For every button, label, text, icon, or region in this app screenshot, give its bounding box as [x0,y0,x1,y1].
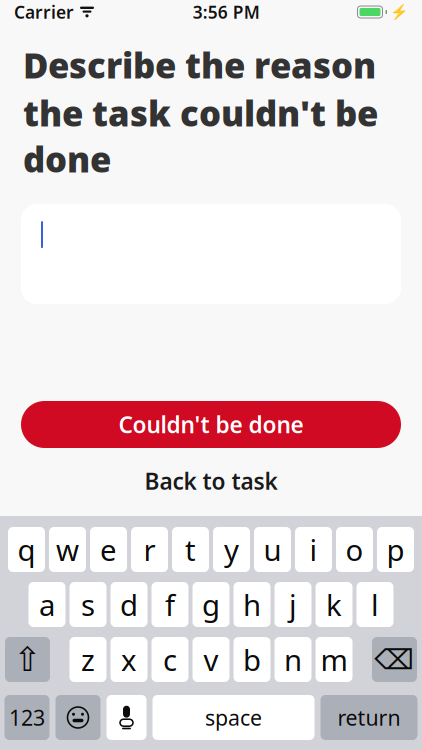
staticText: j [289,585,297,624]
button[interactable]: j [274,582,311,627]
button[interactable]: v [192,637,229,682]
button[interactable]: k [315,582,352,627]
staticText: Couldn't be done [118,409,303,439]
button[interactable]: space [152,695,314,740]
staticText: x [121,640,137,679]
button[interactable]: l [356,582,393,627]
staticText: e [100,530,117,569]
staticText: n [284,640,302,679]
button[interactable]: s [69,582,106,627]
staticText: a [39,585,55,624]
button[interactable]: 123 [4,695,49,740]
staticText: b [243,640,261,679]
staticText: h [243,585,261,624]
staticText: r [143,530,155,569]
button[interactable]: Back to task [21,464,401,498]
staticText: Carrier [14,0,74,23]
button[interactable]: u [254,527,291,572]
staticText: Back to task [144,466,277,496]
button[interactable]: h [233,582,270,627]
staticText: w [56,530,79,569]
button[interactable]: f [151,582,188,627]
staticText: u [263,530,281,569]
staticText: f [165,585,175,624]
staticText: q [17,530,35,569]
button[interactable]: Dictation [106,695,146,740]
staticText: v [203,640,218,679]
staticText: z [81,640,95,679]
staticText: m [320,640,347,679]
staticText: k [326,585,342,624]
button[interactable]: q [8,527,45,572]
button[interactable]: Delete [372,637,417,682]
button[interactable]: w [49,527,86,572]
staticText: o [345,530,363,569]
button[interactable]: Emoji [55,695,100,740]
button[interactable]: z [69,637,106,682]
staticText: 3:56 PM [193,0,260,23]
staticText: return [337,703,400,732]
button[interactable]: y [213,527,250,572]
button[interactable]: g [192,582,229,627]
staticText: ⌫ [374,644,414,675]
staticText: 123 [9,703,45,732]
button[interactable]: o [336,527,373,572]
button[interactable]: m [315,637,352,682]
staticText: space [205,703,262,732]
staticText: g [202,585,220,624]
button[interactable]: i [295,527,332,572]
button[interactable]: x [110,637,147,682]
staticText: t [185,530,196,569]
button[interactable]: return [320,695,417,740]
button[interactable]: Couldn't be done [21,401,401,448]
staticText: l [371,585,379,624]
staticText: p [386,530,404,569]
staticText: ⇧ [13,641,41,678]
staticText: i [309,530,317,569]
button[interactable]: a [28,582,65,627]
button[interactable]: d [110,582,147,627]
button[interactable]: Shift [5,637,50,682]
button[interactable]: e [90,527,127,572]
button[interactable]: n [274,637,311,682]
button[interactable]: b [233,637,270,682]
staticText: Describe the reason [23,42,376,88]
staticText: c [163,640,177,679]
button[interactable]: t [172,527,209,572]
button[interactable]: r [131,527,168,572]
staticText: the task couldn't be done [23,90,378,182]
staticText: s [81,585,95,624]
button[interactable]: p [377,527,414,572]
button[interactable]: c [151,637,188,682]
staticText: d [120,585,138,624]
staticText: y [224,530,239,569]
staticText: ⚡ [390,4,408,20]
